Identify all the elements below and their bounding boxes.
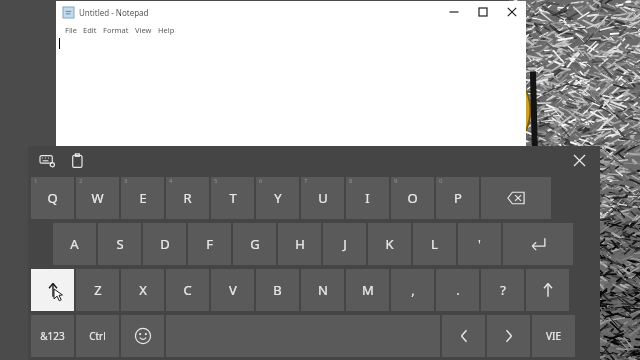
button[interactable]: V <box>211 269 254 311</box>
button[interactable]: H <box>278 223 321 265</box>
button[interactable]: A <box>53 223 96 265</box>
staticText: A <box>70 235 79 253</box>
button[interactable]: Clipboard <box>66 149 88 171</box>
staticText: O <box>407 189 418 207</box>
button[interactable]: S <box>98 223 141 265</box>
staticText: VIE <box>546 329 561 343</box>
button[interactable]: . <box>436 269 479 311</box>
staticText: Format <box>103 25 129 35</box>
staticText: 7 <box>304 177 308 185</box>
staticText: X <box>139 281 147 299</box>
button[interactable]: Z <box>76 269 119 311</box>
staticText: V <box>229 281 237 299</box>
staticText: 9 <box>394 177 398 185</box>
staticText: &123 <box>40 329 65 343</box>
button[interactable]: VIE <box>532 315 575 357</box>
button[interactable]: Maximize <box>468 1 497 23</box>
button[interactable]: K <box>368 223 411 265</box>
staticText: 6 <box>259 177 263 185</box>
button[interactable]: Help <box>155 25 178 35</box>
staticText: ' <box>478 235 481 253</box>
button[interactable]: Minimize <box>439 1 468 23</box>
staticText: N <box>318 281 328 299</box>
staticText: D <box>160 235 170 253</box>
staticText: T <box>229 189 237 207</box>
staticText: . <box>456 281 460 299</box>
button[interactable]: Enter <box>503 223 573 265</box>
staticText: ? <box>500 281 506 299</box>
button[interactable]: X <box>121 269 164 311</box>
button[interactable]: D <box>143 223 186 265</box>
button[interactable]: G <box>233 223 276 265</box>
button[interactable]: &123 <box>31 315 74 357</box>
staticText: R <box>183 189 192 207</box>
button[interactable]: 9 <box>391 177 434 219</box>
button[interactable]: 6 <box>256 177 299 219</box>
staticText: View <box>135 25 152 35</box>
staticText: File <box>65 25 77 35</box>
button[interactable]: 5 <box>211 177 254 219</box>
staticText: Help <box>158 25 175 35</box>
button[interactable]: Edit <box>80 25 100 35</box>
staticText: F <box>206 235 213 253</box>
button[interactable]: 1 <box>31 177 74 219</box>
button[interactable]: ' <box>458 223 501 265</box>
staticText: J <box>343 235 347 253</box>
button[interactable]: 7 <box>301 177 344 219</box>
button[interactable]: 4 <box>166 177 209 219</box>
staticText: Ctrl <box>89 329 106 343</box>
staticText: P <box>454 189 462 207</box>
staticText: E <box>139 189 147 207</box>
button[interactable]: File <box>62 25 80 35</box>
staticText: U <box>318 189 328 207</box>
button[interactable]: Shift <box>31 269 74 311</box>
button[interactable]: Up arrow <box>526 269 569 311</box>
button[interactable]: L <box>413 223 456 265</box>
staticText: Q <box>47 189 58 207</box>
button[interactable]: Backspace <box>481 177 551 219</box>
button[interactable]: 2 <box>76 177 119 219</box>
staticText: Edit <box>83 25 97 35</box>
staticText: 2 <box>79 177 83 185</box>
button[interactable]: Close keyboard <box>567 148 591 172</box>
button[interactable]: ? <box>481 269 524 311</box>
staticText: B <box>273 281 282 299</box>
staticText: C <box>183 281 192 299</box>
button[interactable]: Emoji <box>121 315 164 357</box>
button[interactable]: 8 <box>346 177 389 219</box>
staticText: 4 <box>169 177 173 185</box>
staticText: 5 <box>214 177 218 185</box>
button[interactable]: B <box>256 269 299 311</box>
button[interactable]: Ctrl <box>76 315 119 357</box>
button[interactable]: 3 <box>121 177 164 219</box>
staticText: I <box>365 189 370 207</box>
button[interactable]: , <box>391 269 434 311</box>
staticText: Untitled - Notepad <box>79 7 149 18</box>
button[interactable]: 0 <box>436 177 479 219</box>
staticText: G <box>250 235 260 253</box>
button[interactable]: Right <box>487 315 530 357</box>
staticText: Y <box>274 189 282 207</box>
staticText: S <box>116 235 124 253</box>
staticText: 8 <box>349 177 353 185</box>
button[interactable]: F <box>188 223 231 265</box>
button[interactable]: Keyboard settings <box>36 149 58 171</box>
staticText: 1 <box>34 177 38 185</box>
staticText: M <box>362 281 374 299</box>
staticText: L <box>431 235 438 253</box>
button[interactable]: N <box>301 269 344 311</box>
staticText: 0 <box>439 177 443 185</box>
staticText: H <box>295 235 305 253</box>
button[interactable]: M <box>346 269 389 311</box>
staticText: Z <box>94 281 102 299</box>
staticText: W <box>91 189 104 207</box>
button[interactable]: Format <box>100 25 132 35</box>
button[interactable]: C <box>166 269 209 311</box>
button[interactable]: J <box>323 223 366 265</box>
button[interactable]: View <box>132 25 155 35</box>
staticText: 3 <box>124 177 128 185</box>
button[interactable]: Left <box>442 315 485 357</box>
staticText: , <box>411 281 415 299</box>
button[interactable]: Close <box>497 1 526 23</box>
